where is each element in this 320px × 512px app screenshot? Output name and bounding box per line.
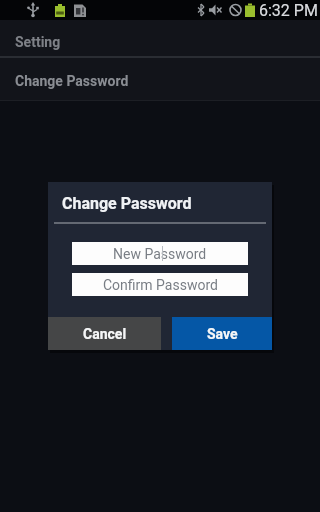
button[interactable]: Cancel: [48, 317, 161, 350]
staticText: New Password: [113, 246, 207, 262]
button[interactable]: New Password: [72, 242, 248, 265]
button[interactable]: Setting: [0, 20, 320, 56]
staticText: 6:32 PM: [259, 1, 318, 20]
button[interactable]: Change Password: [0, 58, 320, 100]
staticText: Cancel: [83, 326, 127, 342]
staticText: Confirm Password: [103, 277, 218, 293]
staticText: Save: [207, 326, 238, 342]
staticText: Change Password: [15, 73, 129, 89]
button[interactable]: Confirm Password: [72, 273, 248, 296]
staticText: Setting: [15, 34, 61, 50]
staticText: Change Password: [62, 194, 192, 213]
button[interactable]: Save: [172, 317, 272, 350]
